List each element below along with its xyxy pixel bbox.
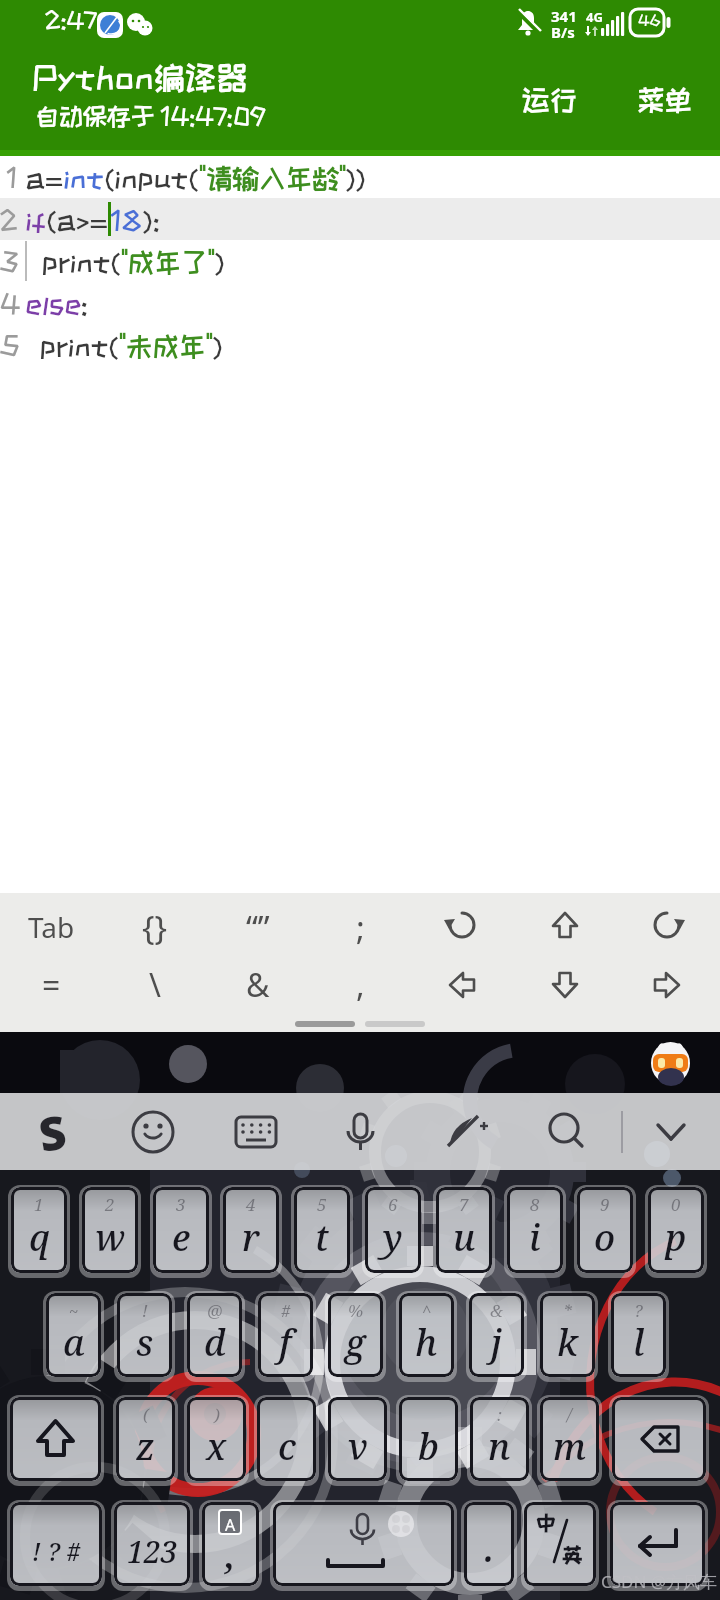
staticText: m: [553, 1422, 586, 1471]
button[interactable]: 中: [524, 1502, 596, 1586]
staticText: 8: [530, 1193, 540, 1216]
staticText: 2: [0, 205, 18, 233]
button[interactable]: \: [103, 957, 206, 1013]
button[interactable]: [515, 899, 618, 955]
staticText: "请输入年龄": [199, 163, 346, 192]
button[interactable]: A: [202, 1502, 259, 1586]
staticText: 2: [105, 1193, 115, 1216]
button[interactable]: !: [117, 1293, 172, 1377]
button[interactable]: 6: [365, 1187, 421, 1273]
staticText: "未成年": [119, 331, 213, 360]
button[interactable]: 9: [577, 1187, 633, 1273]
button[interactable]: [618, 957, 720, 1013]
button[interactable]: ^: [399, 1293, 454, 1377]
staticText: f: [279, 1318, 292, 1367]
button[interactable]: [638, 1101, 702, 1163]
staticText: 1: [7, 163, 18, 191]
button[interactable]: 4: [223, 1187, 279, 1273]
button[interactable]: [610, 1502, 705, 1586]
button[interactable]: 5: [294, 1187, 350, 1273]
staticText: #: [281, 1299, 291, 1322]
button[interactable]: [223, 1101, 287, 1163]
staticText: “”: [246, 905, 270, 950]
button[interactable]: 0: [648, 1187, 704, 1273]
staticText: 2:47: [45, 7, 97, 32]
staticText: if: [25, 205, 46, 234]
button[interactable]: [273, 1502, 454, 1586]
button[interactable]: 菜单: [620, 72, 710, 128]
staticText: (a>=: [46, 205, 108, 234]
button[interactable]: 123: [114, 1502, 190, 1586]
staticText: h: [415, 1318, 438, 1367]
button[interactable]: 7: [436, 1187, 492, 1273]
button[interactable]: @: [187, 1293, 242, 1377]
button[interactable]: [10, 1397, 101, 1481]
staticText: )): [346, 163, 367, 192]
button[interactable]: [612, 1397, 706, 1481]
button[interactable]: .: [464, 1502, 514, 1586]
button[interactable]: c: [257, 1397, 316, 1481]
staticText: i: [529, 1213, 541, 1262]
staticText: 7: [459, 1193, 469, 1216]
button[interactable]: ?: [611, 1293, 666, 1377]
button[interactable]: =: [0, 957, 103, 1013]
button[interactable]: [433, 1101, 497, 1163]
button[interactable]: [121, 1101, 185, 1163]
button[interactable]: “”: [206, 899, 309, 955]
staticText: ! ? #: [32, 1534, 81, 1568]
staticText: w: [95, 1213, 126, 1262]
staticText: (: [143, 1403, 149, 1426]
button[interactable]: %: [328, 1293, 383, 1377]
staticText: &: [246, 963, 270, 1007]
button[interactable]: v: [328, 1397, 387, 1481]
button[interactable]: *: [540, 1293, 595, 1377]
button[interactable]: 1: [11, 1187, 67, 1273]
staticText: j: [491, 1318, 502, 1367]
button[interactable]: {}: [103, 899, 206, 955]
button[interactable]: ~: [46, 1293, 101, 1377]
button[interactable]: #: [258, 1293, 313, 1377]
button[interactable]: ,: [309, 957, 412, 1013]
button[interactable]: [618, 899, 720, 955]
staticText: B/s: [551, 22, 575, 42]
staticText: :: [81, 289, 88, 318]
button[interactable]: [412, 957, 515, 1013]
staticText: g: [345, 1318, 366, 1367]
button[interactable]: ! ? #: [10, 1502, 102, 1586]
staticText: a: [63, 1318, 85, 1367]
staticText: 菜单: [637, 85, 693, 115]
button[interactable]: S: [20, 1101, 84, 1163]
staticText: Python编译器: [32, 60, 248, 94]
button[interactable]: 8: [507, 1187, 563, 1273]
staticText: print(: [25, 331, 119, 360]
button[interactable]: (: [116, 1397, 175, 1481]
button[interactable]: Tab: [0, 899, 103, 955]
staticText: d: [204, 1318, 226, 1367]
button[interactable]: [328, 1101, 392, 1163]
button[interactable]: &: [206, 957, 309, 1013]
button[interactable]: ): [187, 1397, 246, 1481]
staticText: 123: [127, 1531, 178, 1572]
button[interactable]: 2: [82, 1187, 138, 1273]
staticText: 341: [551, 6, 577, 26]
button[interactable]: /: [540, 1397, 599, 1481]
staticText: @: [207, 1299, 223, 1322]
button[interactable]: 3: [153, 1187, 209, 1273]
staticText: v: [348, 1422, 368, 1471]
button[interactable]: [535, 1101, 599, 1163]
staticText: ?: [634, 1299, 643, 1322]
staticText: 3: [176, 1193, 186, 1216]
button[interactable]: &: [469, 1293, 524, 1377]
staticText: (input(: [104, 163, 199, 192]
staticText: y: [383, 1213, 403, 1262]
button[interactable]: [412, 899, 515, 955]
staticText: \: [149, 963, 161, 1007]
button[interactable]: 运行: [505, 72, 595, 128]
button[interactable]: :: [470, 1397, 529, 1481]
button[interactable]: b: [399, 1397, 458, 1481]
staticText: 4: [0, 289, 18, 317]
button[interactable]: [515, 957, 618, 1013]
button[interactable]: [648, 1038, 694, 1088]
button[interactable]: ;: [309, 899, 412, 955]
staticText: 运行: [522, 85, 578, 115]
